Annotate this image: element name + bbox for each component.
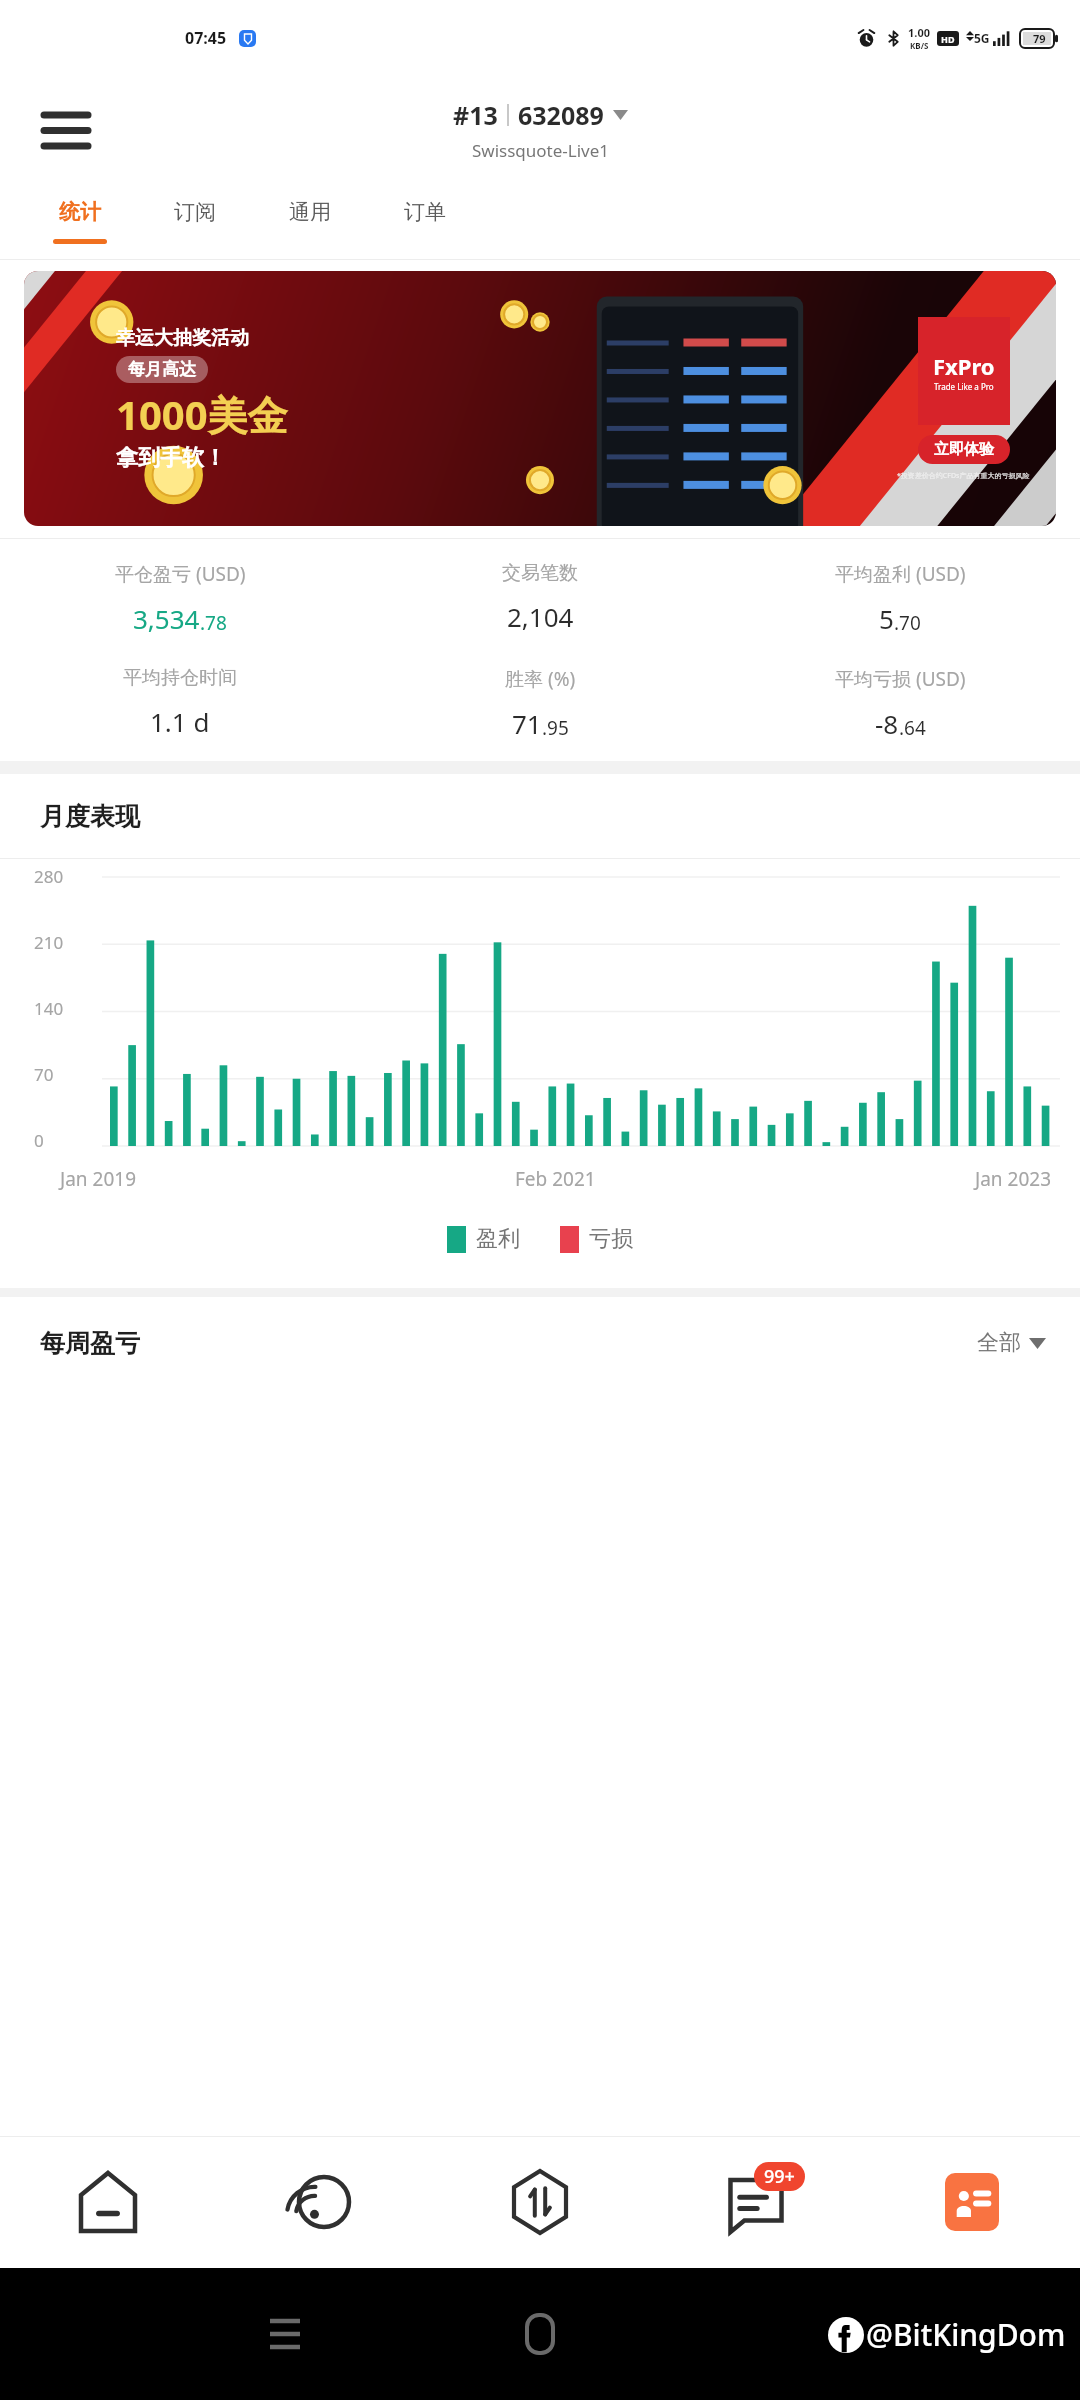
staticText: 140 bbox=[34, 997, 64, 1020]
button[interactable]: 通用 bbox=[252, 185, 367, 260]
staticText: 拿到手软！ bbox=[116, 444, 226, 472]
button[interactable]: #13 bbox=[453, 98, 628, 162]
staticText: 订阅 bbox=[174, 199, 216, 225]
staticText: Jan 2019 bbox=[60, 1166, 137, 1192]
button[interactable]: 盈利 bbox=[447, 1225, 520, 1253]
staticText: 280 bbox=[34, 865, 64, 888]
staticText: KB/S bbox=[910, 40, 929, 51]
button[interactable]: 平仓盈亏 (USD) bbox=[0, 561, 360, 636]
staticText: .64 bbox=[899, 715, 926, 741]
button[interactable]: 订阅 bbox=[137, 185, 252, 260]
staticText: 全部 bbox=[977, 1329, 1021, 1357]
staticText: 1.00 bbox=[908, 25, 930, 40]
staticText: .95 bbox=[542, 715, 569, 741]
button[interactable]: Profile bbox=[864, 2136, 1080, 2268]
staticText: 通用 bbox=[289, 199, 331, 225]
staticText: Feb 2021 bbox=[515, 1166, 596, 1192]
staticText: 亏损 bbox=[589, 1225, 633, 1253]
button[interactable]: 胜率 (%) bbox=[360, 666, 720, 741]
button[interactable]: 交易笔数 bbox=[360, 561, 720, 634]
staticText: 5 bbox=[879, 601, 894, 636]
staticText: .70 bbox=[894, 610, 921, 636]
button[interactable]: Home bbox=[0, 2136, 216, 2268]
staticText: #13 bbox=[453, 98, 498, 132]
button[interactable]: Messages bbox=[648, 2136, 864, 2268]
staticText: 订单 bbox=[404, 199, 446, 225]
staticText: 70 bbox=[34, 1063, 54, 1086]
button[interactable]: 平均盈利 (USD) bbox=[720, 561, 1080, 636]
staticText: Jan 2023 bbox=[975, 1166, 1052, 1192]
staticText: -8 bbox=[875, 706, 899, 741]
staticText: 平仓盈亏 (USD) bbox=[115, 561, 246, 587]
button[interactable]: Menu bbox=[30, 94, 102, 166]
staticText: 每周盈亏 bbox=[40, 1328, 140, 1359]
button[interactable]: FxPro promotion banner bbox=[24, 271, 1056, 526]
staticText: HD bbox=[941, 33, 955, 45]
staticText: 2,104 bbox=[507, 599, 574, 634]
staticText: Swissquote-Live1 bbox=[472, 139, 610, 162]
staticText: *投资差价合约CFDs产品有重大的亏损风险 bbox=[897, 471, 1030, 481]
staticText: 平均盈利 (USD) bbox=[835, 561, 966, 587]
button[interactable]: 平均持仓时间 bbox=[0, 666, 360, 739]
staticText: 632089 bbox=[518, 98, 604, 132]
staticText: FxPro bbox=[933, 351, 995, 381]
button[interactable]: 平均亏损 (USD) bbox=[720, 666, 1080, 741]
staticText: 统计 bbox=[59, 199, 101, 225]
button[interactable]: Signals bbox=[216, 2136, 432, 2268]
staticText: 07:45 bbox=[185, 27, 227, 49]
staticText: 交易笔数 bbox=[502, 561, 578, 585]
staticText: 平均亏损 (USD) bbox=[835, 666, 966, 692]
staticText: 79 bbox=[1033, 31, 1046, 46]
staticText: 1000美金 bbox=[116, 387, 288, 442]
button[interactable]: 全部 bbox=[977, 1329, 1046, 1357]
staticText: 平均持仓时间 bbox=[123, 666, 237, 690]
staticText: 1.1 d bbox=[150, 704, 210, 739]
staticText: 立即体验 bbox=[934, 440, 994, 459]
staticText: 99+ bbox=[764, 2164, 795, 2189]
staticText: 胜率 (%) bbox=[505, 666, 576, 692]
staticText: 月度表现 bbox=[40, 801, 140, 832]
button[interactable]: Home bbox=[508, 2302, 572, 2366]
staticText: @BitKingDom bbox=[866, 2314, 1066, 2355]
button[interactable]: 亏损 bbox=[560, 1225, 633, 1253]
button[interactable]: Trade bbox=[432, 2136, 648, 2268]
staticText: 3,534 bbox=[133, 601, 200, 636]
staticText: 0 bbox=[34, 1129, 44, 1152]
staticText: Trade Like a Pro bbox=[934, 381, 994, 392]
staticText: 71 bbox=[512, 706, 542, 741]
button[interactable]: 统计 bbox=[22, 185, 137, 260]
button[interactable]: Recents bbox=[255, 2304, 315, 2364]
staticText: .78 bbox=[200, 610, 227, 636]
staticText: 210 bbox=[34, 931, 64, 954]
staticText: 幸运大抽奖活动 bbox=[116, 326, 249, 350]
staticText: 5G bbox=[974, 30, 990, 46]
staticText: 每月高达 bbox=[128, 359, 196, 380]
button[interactable]: 订单 bbox=[367, 185, 482, 260]
button[interactable]: 立即体验 bbox=[934, 440, 994, 459]
staticText: 盈利 bbox=[476, 1225, 520, 1253]
